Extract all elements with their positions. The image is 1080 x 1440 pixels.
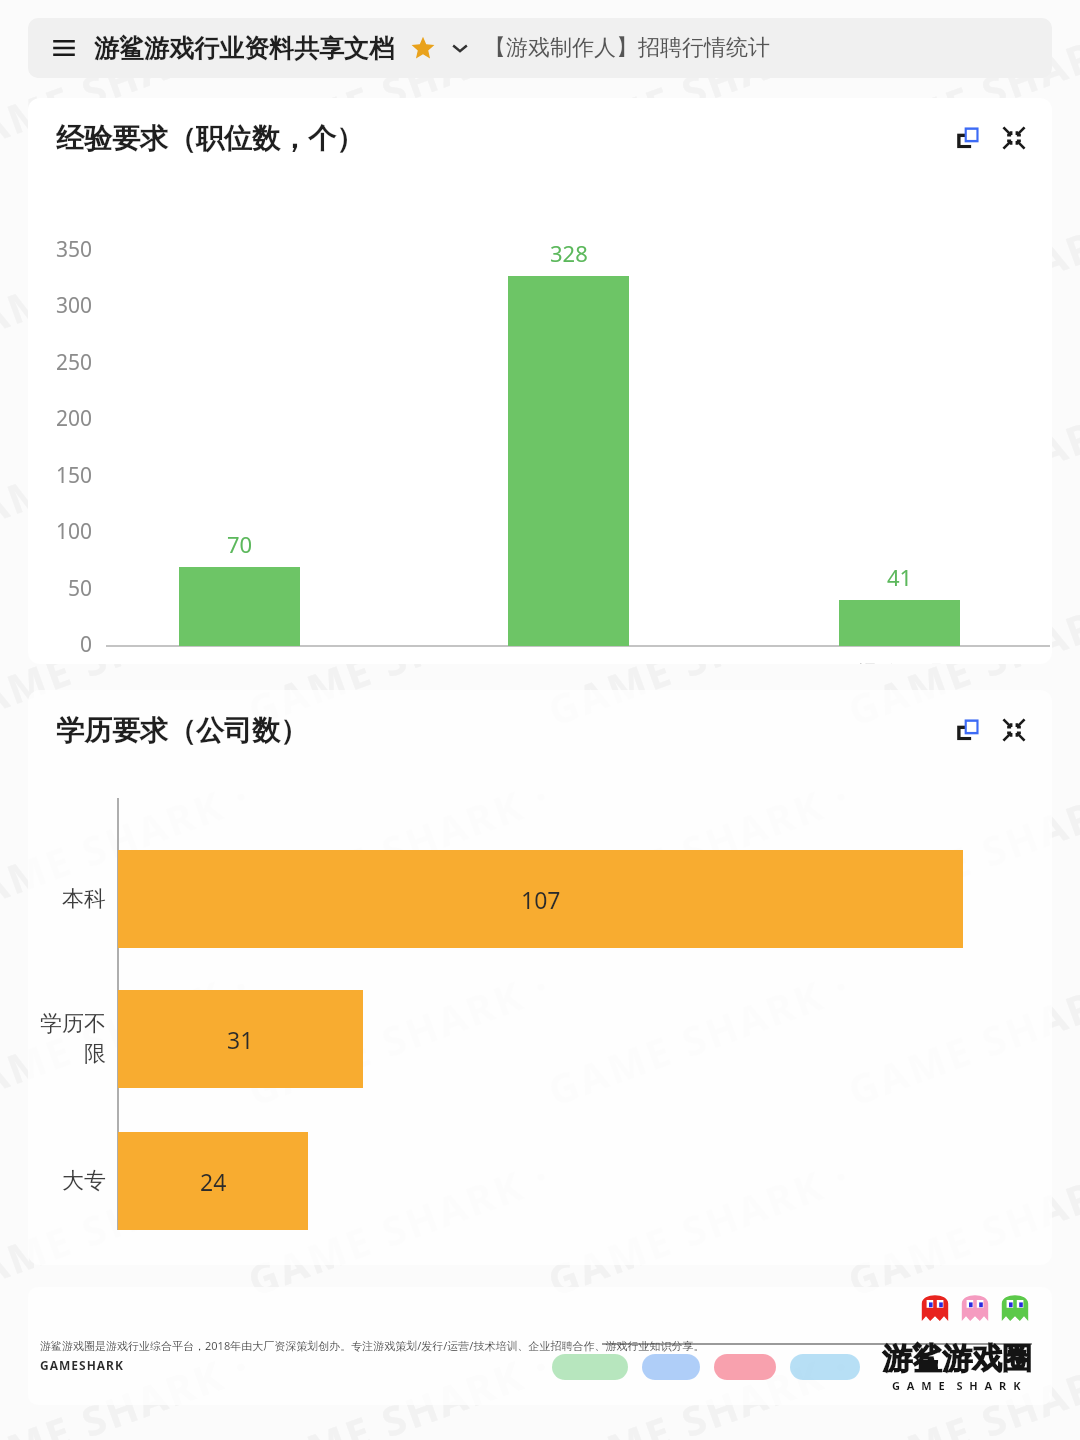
button[interactable]: Expand bbox=[446, 34, 474, 62]
button[interactable]: Open in new bbox=[948, 710, 988, 750]
staticText: GAME SHARK · bbox=[0, 387, 258, 547]
staticText: 经验不限 bbox=[856, 660, 944, 664]
button[interactable]: Social link bbox=[714, 1354, 776, 1380]
staticText: GAME SHARK · bbox=[840, 577, 1080, 737]
staticText: GAME SHARK · bbox=[0, 1337, 258, 1440]
staticText: 经验要求（职位数，个） bbox=[56, 121, 364, 156]
staticText: GAME SHARK · bbox=[0, 767, 258, 927]
staticText: GAME SHARK · bbox=[0, 577, 258, 737]
staticText: GAME SHARK · bbox=[540, 767, 858, 927]
staticText: GAME SHARK · bbox=[240, 387, 558, 547]
staticText: GAME SHARK · bbox=[240, 1147, 558, 1307]
staticText: 250 bbox=[55, 348, 92, 377]
staticText: 31 bbox=[227, 1024, 254, 1055]
button[interactable]: Social link bbox=[642, 1354, 700, 1380]
button[interactable]: 经验要求（职位数，个） bbox=[28, 98, 1052, 664]
staticText: 学历要求（公司数） bbox=[56, 713, 308, 748]
staticText: GAME SHARK · bbox=[0, 197, 258, 357]
staticText: 41 bbox=[887, 562, 913, 592]
button[interactable]: Menu bbox=[28, 18, 1052, 78]
staticText: 游鲨游戏圈 bbox=[882, 1340, 1032, 1378]
staticText: GAME SHARK · bbox=[240, 577, 558, 737]
staticText: GAME SHARK · bbox=[240, 767, 558, 927]
staticText: GAMESHARK bbox=[40, 1357, 124, 1373]
button[interactable]: Collapse bbox=[994, 710, 1034, 750]
staticText: GAME SHARK · bbox=[0, 1147, 258, 1307]
staticText: GAME SHARK · bbox=[840, 767, 1080, 927]
button[interactable]: Social link bbox=[790, 1354, 860, 1380]
button[interactable]: Menu bbox=[46, 30, 82, 66]
staticText: GAME SHARK · bbox=[540, 197, 858, 357]
staticText: 300 bbox=[55, 291, 92, 320]
staticText: GAME SHARK · bbox=[240, 1337, 558, 1440]
staticText: 200 bbox=[55, 404, 92, 433]
staticText: 0 bbox=[79, 630, 92, 659]
staticText: 【游戏制作人】招聘行情统计 bbox=[484, 34, 770, 62]
staticText: 70 bbox=[227, 529, 253, 559]
staticText: GAME SHARK · bbox=[240, 197, 558, 357]
staticText: GAME SHARK · bbox=[840, 1147, 1080, 1307]
staticText: 350 bbox=[55, 235, 92, 264]
staticText: 50 bbox=[67, 574, 92, 603]
staticText: GAME SHARK · bbox=[840, 7, 1080, 167]
button[interactable]: Favorite bbox=[408, 33, 438, 63]
button[interactable]: Social link bbox=[552, 1354, 628, 1380]
staticText: GAME SHARK · bbox=[0, 7, 258, 167]
button[interactable]: Collapse bbox=[994, 118, 1034, 158]
staticText: GAME SHARK · bbox=[240, 957, 558, 1117]
button[interactable]: Open in new bbox=[948, 118, 988, 158]
staticText: 328 bbox=[550, 238, 588, 268]
staticText: GAME SHARK · bbox=[0, 957, 258, 1117]
button[interactable]: 学历要求（公司数） bbox=[28, 690, 1052, 1265]
staticText: GAME SHARK · bbox=[540, 7, 858, 167]
staticText: 大专 bbox=[62, 1167, 106, 1195]
staticText: 150 bbox=[55, 461, 92, 490]
staticText: GAME SHARK · bbox=[840, 1337, 1080, 1440]
staticText: 游鲨游戏行业资料共享文档 bbox=[94, 33, 394, 64]
staticText: GAME SHARK · bbox=[540, 577, 858, 737]
staticText: 100 bbox=[55, 517, 92, 546]
staticText: 游鲨游戏圈是游戏行业综合平台，2018年由大厂资深策划创办。专注游戏策划/发行/… bbox=[40, 1338, 705, 1353]
staticText: GAME SHARK · bbox=[540, 1337, 858, 1440]
staticText: G A M E S H A R K bbox=[892, 1378, 1023, 1393]
staticText: 学历不限 bbox=[28, 1010, 106, 1068]
staticText: GAME SHARK · bbox=[240, 7, 558, 167]
staticText: 24 bbox=[200, 1166, 227, 1197]
staticText: 107 bbox=[521, 884, 561, 915]
staticText: GAME SHARK · bbox=[540, 387, 858, 547]
staticText: 本科 bbox=[62, 885, 106, 913]
